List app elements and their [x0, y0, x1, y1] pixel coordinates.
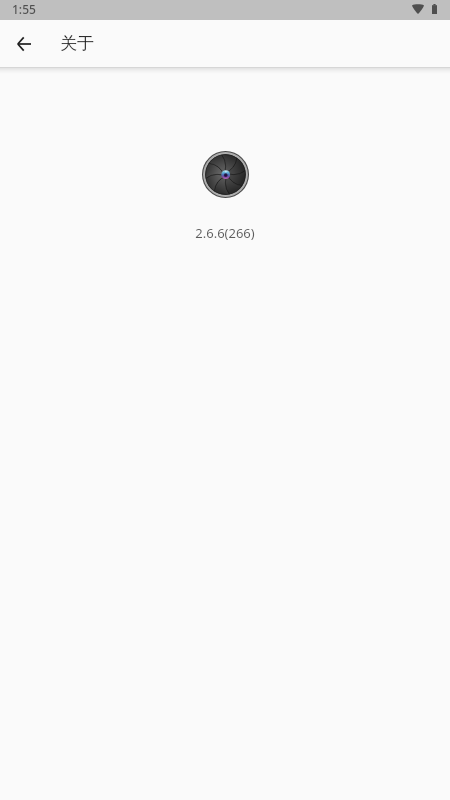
staticText: 关于 [60, 33, 94, 54]
staticText: 2.6.6(266) [195, 224, 255, 242]
staticText: 1:55 [12, 1, 36, 17]
button[interactable]: Back [4, 24, 44, 64]
